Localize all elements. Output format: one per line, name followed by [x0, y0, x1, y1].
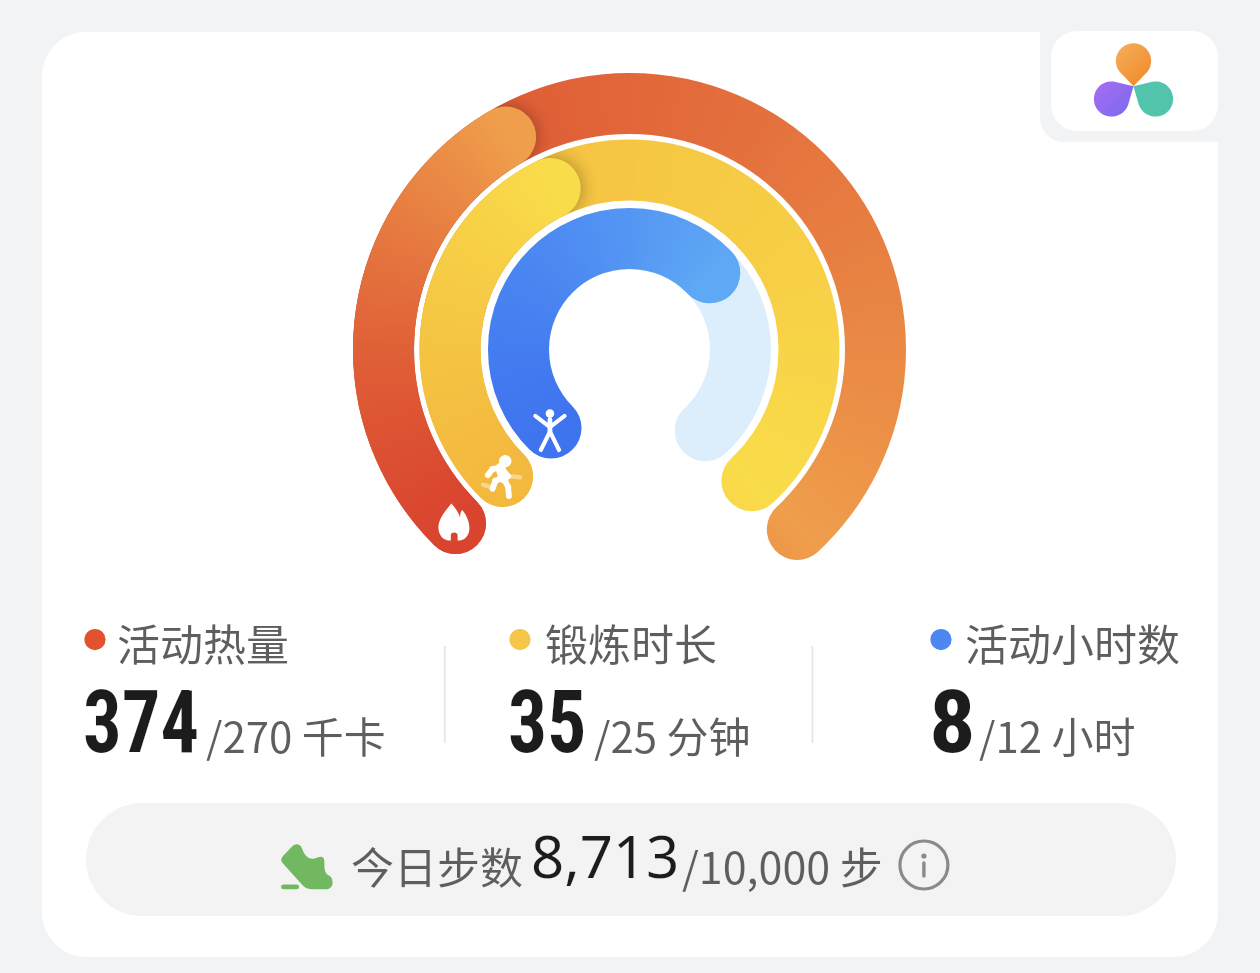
button[interactable]: 活动热量: [83, 612, 463, 762]
staticText: /270 千卡: [206, 704, 386, 765]
staticText: /25 分钟: [594, 704, 751, 765]
staticText: 374: [83, 670, 200, 773]
button[interactable]: 锻炼时长: [508, 612, 888, 762]
staticText: 8: [929, 670, 976, 773]
staticText: 8,713: [531, 816, 680, 895]
button[interactable]: 活动小时数: [929, 612, 1260, 762]
button[interactable]: 步数说明: [896, 837, 952, 893]
staticText: 今日步数: [351, 834, 523, 896]
staticText: 35: [508, 670, 586, 773]
staticText: /10,000 步: [682, 834, 883, 896]
button[interactable]: 今日步数: [86, 803, 1176, 916]
staticText: 活动热量: [117, 611, 289, 673]
button[interactable]: 活动概览: [1051, 31, 1218, 131]
staticText: /12 小时: [979, 704, 1136, 765]
staticText: 锻炼时长: [545, 611, 717, 673]
staticText: 活动小时数: [965, 611, 1180, 673]
